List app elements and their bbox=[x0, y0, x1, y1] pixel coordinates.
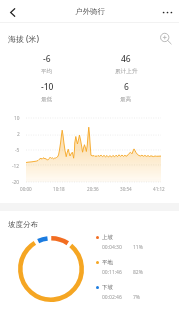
button[interactable]: Back bbox=[3, 3, 21, 21]
staticText: 11% bbox=[133, 244, 143, 251]
staticText: 最高 bbox=[120, 96, 132, 103]
button[interactable]: 上坡 bbox=[96, 234, 174, 256]
staticText: -12 bbox=[12, 163, 20, 169]
staticText: 10 bbox=[14, 115, 20, 121]
staticText: 2 bbox=[17, 131, 20, 137]
staticText: 户外骑行 bbox=[75, 7, 105, 16]
staticText: 累计上升 bbox=[115, 68, 138, 75]
staticText: 00:04:30 bbox=[102, 244, 122, 251]
staticText: 00:00 bbox=[20, 186, 32, 192]
staticText: -5 bbox=[15, 147, 20, 153]
staticText: 坡度分布 bbox=[8, 220, 38, 229]
staticText: 30:54 bbox=[120, 186, 132, 192]
staticText: 6 bbox=[124, 81, 129, 93]
staticText: 最低 bbox=[41, 96, 53, 103]
staticText: 00:11:46 bbox=[102, 269, 122, 276]
staticText: 7% bbox=[133, 294, 141, 301]
button[interactable]: Zoom in bbox=[157, 30, 173, 46]
staticText: 82% bbox=[133, 269, 143, 276]
staticText: 41:12 bbox=[153, 186, 165, 192]
staticText: 海拔 (米) bbox=[8, 33, 40, 44]
staticText: -10 bbox=[41, 81, 54, 93]
staticText: 下坡 bbox=[102, 284, 113, 291]
staticText: 平地 bbox=[102, 259, 113, 266]
button[interactable]: 平地 bbox=[96, 259, 174, 281]
staticText: -6 bbox=[43, 53, 51, 65]
button[interactable]: More options bbox=[158, 3, 176, 21]
staticText: -20 bbox=[12, 179, 20, 185]
staticText: 00:02:46 bbox=[102, 294, 122, 301]
staticText: 10:18 bbox=[53, 186, 65, 192]
staticText: 上坡 bbox=[102, 234, 113, 241]
button[interactable]: 下坡 bbox=[96, 284, 174, 306]
staticText: 20:36 bbox=[87, 186, 99, 192]
staticText: 46 bbox=[121, 53, 131, 65]
staticText: 平均 bbox=[41, 68, 53, 75]
